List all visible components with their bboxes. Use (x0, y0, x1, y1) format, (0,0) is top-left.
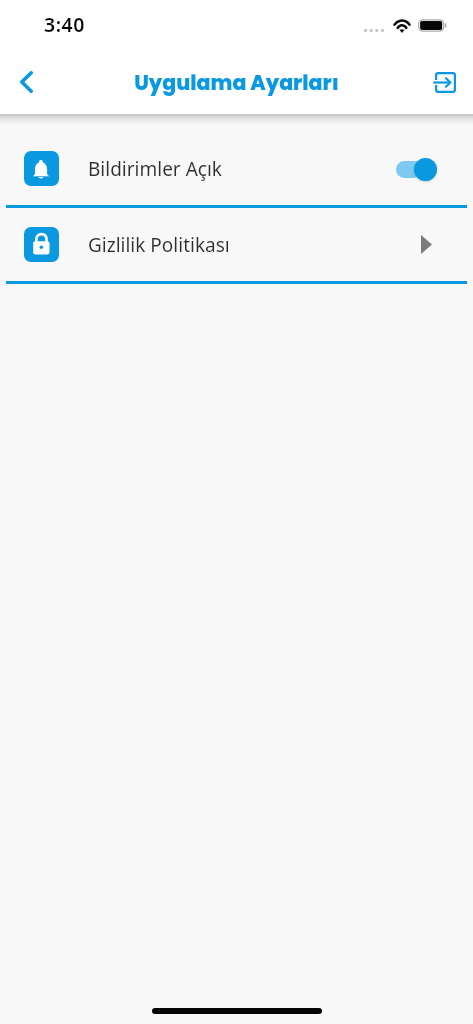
button[interactable]: Gizlilik Politikası (0, 208, 473, 281)
button[interactable]: Logout (421, 58, 469, 106)
staticText: Gizlilik Politikası (88, 232, 230, 258)
staticText: Uygulama Ayarları (134, 68, 339, 97)
button[interactable]: Bildirimler Açık (0, 132, 473, 205)
staticText: Bildirimler Açık (88, 156, 222, 182)
button[interactable]: Bildirimler açık (396, 152, 437, 186)
button[interactable]: Back (2, 58, 50, 106)
staticText: 3:40 (44, 11, 85, 38)
